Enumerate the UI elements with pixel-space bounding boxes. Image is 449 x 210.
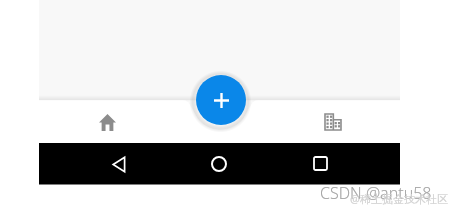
button[interactable]: Home: [85, 100, 129, 144]
button[interactable]: Add: [196, 75, 246, 125]
staticText: @稀土掘金技术社区: [350, 191, 448, 206]
button[interactable]: Business: [311, 100, 355, 144]
button[interactable]: Back: [100, 145, 138, 183]
staticText: CSDN @antu58: [320, 182, 432, 204]
button[interactable]: Home: [200, 145, 238, 183]
button[interactable]: Recent apps: [301, 144, 339, 182]
